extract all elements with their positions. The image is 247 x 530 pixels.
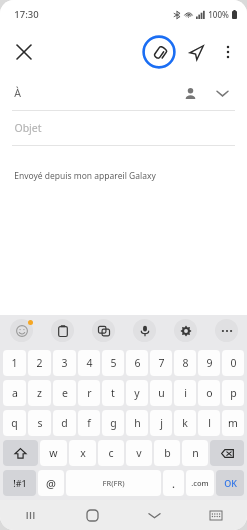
staticText: f xyxy=(87,416,91,430)
staticText: 4 xyxy=(86,356,93,370)
staticText: . xyxy=(172,476,175,491)
button[interactable]: Close xyxy=(8,36,40,68)
button[interactable]: Shift xyxy=(3,440,38,466)
button[interactable]: Recents xyxy=(0,500,61,530)
staticText: @ xyxy=(46,476,56,491)
staticText: t xyxy=(111,386,115,400)
staticText: 100% xyxy=(208,9,229,20)
button[interactable]: . xyxy=(163,470,184,496)
staticText: 1 xyxy=(11,356,18,370)
button[interactable]: 5 xyxy=(102,350,124,376)
button[interactable]: Objet xyxy=(0,111,247,145)
button[interactable]: More xyxy=(206,315,247,346)
button[interactable]: Envoyé depuis mon appareil Galaxy xyxy=(0,146,247,315)
staticText: 2 xyxy=(36,356,43,370)
staticText: 17:30 xyxy=(14,8,39,21)
staticText: u xyxy=(158,386,165,400)
button[interactable]: FR(FR) xyxy=(66,470,161,496)
staticText: 0 xyxy=(230,356,237,370)
button[interactable]: j xyxy=(150,410,172,436)
button[interactable]: Home xyxy=(61,500,123,530)
staticText: g xyxy=(110,416,117,430)
button[interactable]: s xyxy=(28,410,51,436)
button[interactable]: g xyxy=(102,410,124,436)
staticText: r xyxy=(87,386,92,400)
button[interactable]: v xyxy=(126,440,152,466)
button[interactable]: Backspace xyxy=(210,440,244,466)
staticText: 5 xyxy=(110,356,117,370)
button[interactable]: y xyxy=(126,380,148,406)
staticText: v xyxy=(136,446,142,460)
button[interactable]: n xyxy=(182,440,208,466)
staticText: 3 xyxy=(61,356,68,370)
button[interactable]: 8 xyxy=(174,350,196,376)
staticText: w xyxy=(49,446,58,460)
button[interactable]: d xyxy=(53,410,76,436)
button[interactable]: @ xyxy=(38,470,64,496)
button[interactable]: 6 xyxy=(126,350,148,376)
button[interactable]: f xyxy=(78,410,100,436)
button[interactable]: 1 xyxy=(3,350,26,376)
staticText: n xyxy=(192,446,199,460)
button[interactable]: a xyxy=(3,380,26,406)
button[interactable]: 7 xyxy=(150,350,172,376)
staticText: i xyxy=(184,386,187,400)
button[interactable]: i xyxy=(174,380,196,406)
button[interactable]: Send xyxy=(179,35,213,69)
button[interactable]: Attach file xyxy=(139,32,179,72)
button[interactable]: m xyxy=(222,410,244,436)
button[interactable]: !#1 xyxy=(3,470,36,496)
button[interactable]: Stickers xyxy=(83,315,124,346)
button[interactable]: Settings xyxy=(165,315,206,346)
button[interactable]: Hide keyboard xyxy=(123,500,185,530)
staticText: m xyxy=(228,416,238,430)
button[interactable]: À xyxy=(0,76,247,110)
staticText: o xyxy=(206,386,213,400)
button[interactable]: b xyxy=(154,440,180,466)
button[interactable]: t xyxy=(102,380,124,406)
staticText: Objet xyxy=(14,121,42,135)
button[interactable]: 2 xyxy=(28,350,51,376)
button[interactable]: Emoji xyxy=(0,315,42,346)
button[interactable]: OK xyxy=(216,470,244,496)
button[interactable]: 0 xyxy=(222,350,244,376)
button[interactable]: 4 xyxy=(78,350,100,376)
staticText: c xyxy=(108,446,114,460)
button[interactable]: Add contact xyxy=(179,82,201,104)
button[interactable]: Expand recipients xyxy=(211,82,233,104)
button[interactable]: x xyxy=(69,440,96,466)
button[interactable]: Clipboard xyxy=(42,315,83,346)
staticText: s xyxy=(37,416,43,430)
staticText: b xyxy=(164,446,171,460)
staticText: y xyxy=(134,386,140,400)
staticText: 7 xyxy=(158,356,165,370)
button[interactable]: 9 xyxy=(198,350,220,376)
button[interactable]: p xyxy=(222,380,244,406)
button[interactable]: q xyxy=(3,410,26,436)
staticText: 8 xyxy=(182,356,189,370)
button[interactable]: w xyxy=(40,440,67,466)
staticText: d xyxy=(61,416,68,430)
staticText: .com xyxy=(191,478,209,488)
staticText: 6 xyxy=(134,356,141,370)
staticText: e xyxy=(62,386,68,400)
button[interactable]: o xyxy=(198,380,220,406)
button[interactable]: More options xyxy=(213,37,243,67)
button[interactable]: z xyxy=(28,380,51,406)
staticText: k xyxy=(182,416,188,430)
staticText: Envoyé depuis mon appareil Galaxy xyxy=(14,170,156,182)
button[interactable]: .com xyxy=(186,470,214,496)
button[interactable]: r xyxy=(78,380,100,406)
staticText: !#1 xyxy=(13,477,27,489)
button[interactable]: 3 xyxy=(53,350,76,376)
button[interactable]: k xyxy=(174,410,196,436)
staticText: z xyxy=(37,386,42,400)
button[interactable]: u xyxy=(150,380,172,406)
button[interactable]: Voice input xyxy=(124,315,165,346)
button[interactable]: h xyxy=(126,410,148,436)
button[interactable]: l xyxy=(198,410,220,436)
button[interactable]: e xyxy=(53,380,76,406)
button[interactable]: c xyxy=(98,440,124,466)
button[interactable]: Change keyboard xyxy=(185,500,247,530)
staticText: q xyxy=(11,416,18,430)
